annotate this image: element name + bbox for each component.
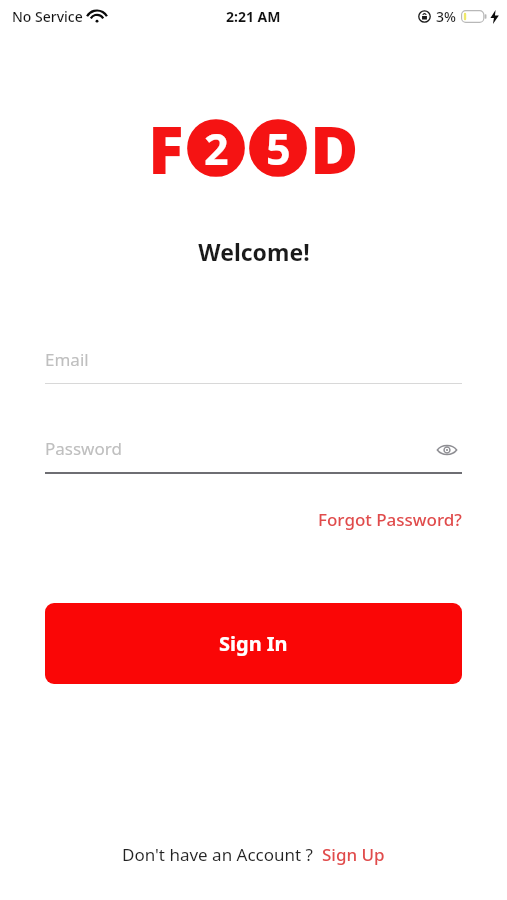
staticText: 2 xyxy=(204,119,229,178)
button[interactable]: Forgot Password? xyxy=(318,508,462,531)
staticText: 5 xyxy=(266,119,291,178)
button[interactable]: Sign In xyxy=(45,603,462,684)
button[interactable]: Password xyxy=(45,437,462,474)
staticText: Don't have an Account ? xyxy=(122,843,313,866)
staticText: No Service xyxy=(12,7,83,26)
staticText: D xyxy=(310,103,359,193)
button[interactable]: Show password xyxy=(432,435,462,465)
staticText: 2:21 AM xyxy=(226,7,281,26)
staticText: F xyxy=(148,103,184,193)
staticText: Password xyxy=(45,437,122,460)
staticText: Welcome! xyxy=(198,236,310,267)
button[interactable]: Email xyxy=(45,348,462,384)
staticText: Sign In xyxy=(219,630,288,657)
staticText: 3% xyxy=(436,7,456,26)
button[interactable]: Sign Up xyxy=(322,843,385,866)
staticText: Email xyxy=(45,348,89,371)
